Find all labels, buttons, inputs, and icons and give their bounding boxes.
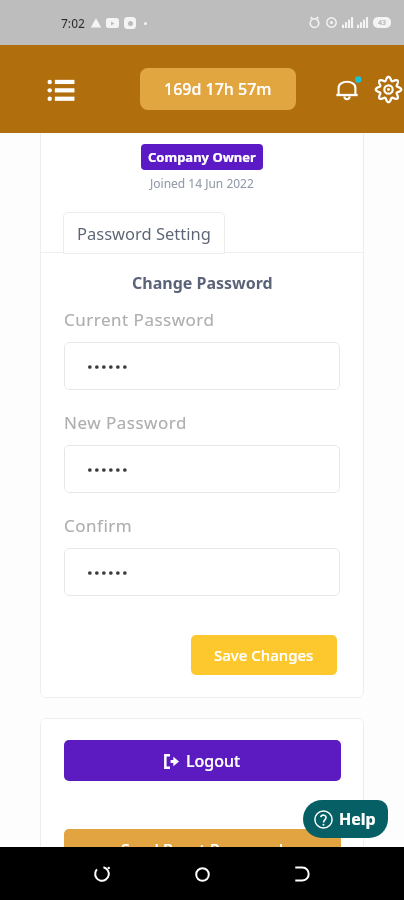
staticText: Company Owner	[148, 148, 256, 166]
button[interactable]: Back	[82, 854, 122, 894]
staticText: Password Setting	[77, 222, 211, 244]
staticText: 169d 17h 57m	[164, 78, 272, 100]
button[interactable]: Home	[182, 854, 222, 894]
button[interactable]: Password Setting	[63, 212, 225, 254]
button[interactable]	[64, 548, 340, 596]
staticText: Change Password	[132, 272, 273, 294]
button[interactable]	[64, 342, 340, 390]
button[interactable]: Settings	[366, 67, 404, 111]
staticText: Help	[339, 808, 376, 830]
staticText: 43	[378, 18, 387, 28]
staticText: Logout	[186, 750, 241, 772]
button[interactable]: Save Changes	[191, 635, 337, 675]
staticText: Send Reset Password	[121, 839, 284, 861]
staticText: Joined 14 Jun 2022	[150, 175, 254, 191]
staticText: Confirm	[64, 514, 133, 537]
staticText: 7:02	[61, 15, 85, 31]
button[interactable]	[64, 445, 340, 493]
staticText: Save Changes	[214, 645, 314, 665]
button[interactable]: Recents	[282, 854, 322, 894]
button[interactable]: Company Owner	[141, 144, 263, 170]
staticText: Current Password	[64, 308, 215, 331]
button[interactable]: Logout	[64, 740, 341, 781]
button[interactable]: 169d 17h 57m	[140, 68, 296, 110]
button[interactable]: Menu	[33, 61, 89, 117]
button[interactable]: Send Reset Password	[64, 829, 341, 870]
button[interactable]: Help	[303, 800, 388, 838]
staticText: New Password	[64, 411, 187, 434]
button[interactable]: Notifications	[324, 66, 370, 112]
